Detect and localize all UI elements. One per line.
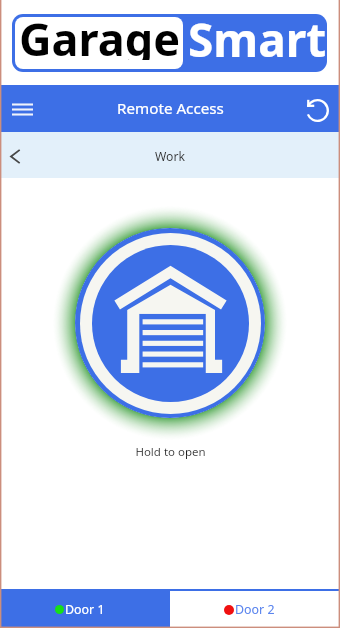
staticText: Work	[155, 148, 186, 165]
staticText: Garage	[19, 17, 181, 60]
button[interactable]: Door 2	[170, 589, 340, 628]
staticText: Hold to open	[135, 444, 206, 460]
button[interactable]: Hold to open garage door	[75, 228, 265, 418]
button[interactable]: Back	[0, 140, 31, 171]
button[interactable]: Garage	[12, 14, 327, 72]
button[interactable]: Menu	[2, 89, 42, 129]
button[interactable]: Door 1	[0, 589, 170, 628]
staticText: Door 2	[235, 601, 275, 618]
button[interactable]: Refresh	[297, 90, 335, 128]
staticText: Remote Access	[117, 98, 224, 119]
staticText: Door 1	[65, 601, 105, 618]
staticText: Smart	[188, 14, 327, 66]
